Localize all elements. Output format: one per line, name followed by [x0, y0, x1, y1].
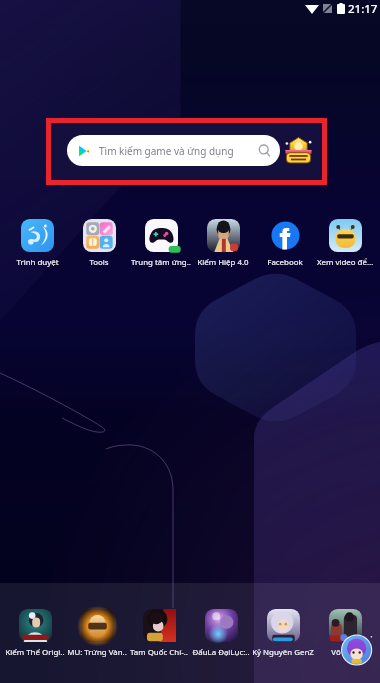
button[interactable]: ĐấuLa ĐạiLục:..: [190, 609, 252, 658]
button[interactable]: Facebook: [254, 219, 316, 268]
button[interactable]: Tools: [68, 219, 130, 268]
staticText: Kiếm Thế Origi..: [5, 647, 65, 658]
button[interactable]: Xem video để n..: [316, 219, 374, 268]
button[interactable]: Võ Lâm: [314, 609, 376, 658]
staticText: 21:17: [348, 1, 378, 17]
staticText: Võ Lâm: [331, 647, 359, 658]
staticText: MU: Trứng Vàn..: [67, 647, 127, 658]
staticText: Tam Quốc Chí-..: [130, 647, 188, 658]
staticText: Kiếm Hiệp 4.0: [197, 257, 249, 268]
button[interactable]: Trung tâm ứng..: [130, 219, 192, 268]
staticText: Tools: [89, 257, 109, 268]
button[interactable]: Kiếm Hiệp 4.0: [192, 219, 254, 268]
button[interactable]: Rewards: [285, 137, 312, 164]
button[interactable]: Trình duyệt: [6, 219, 68, 268]
staticText: Trung tâm ứng..: [131, 257, 191, 268]
button[interactable]: MU: Trứng Vàn..: [66, 609, 128, 658]
staticText: ĐấuLa ĐạiLục:..: [192, 647, 250, 658]
button[interactable]: Tìm kiếm game và ứng dụng: [67, 135, 280, 166]
other: Search: [258, 144, 271, 157]
button[interactable]: Kỷ Nguyên GenZ: [252, 609, 314, 658]
staticText: Tìm kiếm game và ứng dụng: [99, 144, 234, 158]
button[interactable]: Tam Quốc Chí-..: [128, 609, 190, 658]
staticText: Xem video để n..: [316, 257, 374, 268]
staticText: Trình duyệt: [16, 257, 59, 268]
staticText: Kỷ Nguyên GenZ: [252, 647, 314, 658]
button[interactable]: Assistant: [338, 631, 376, 669]
button[interactable]: Kiếm Thế Origi..: [4, 609, 66, 658]
staticText: Facebook: [267, 257, 303, 268]
